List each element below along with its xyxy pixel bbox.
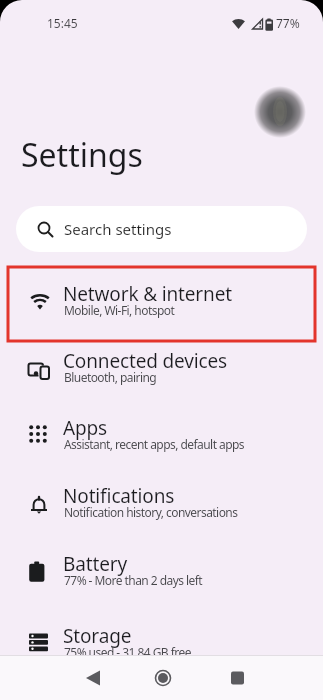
button[interactable] — [215, 655, 323, 700]
button[interactable] — [0, 655, 107, 700]
staticText: Battery — [63, 551, 127, 577]
button[interactable]: Network & internet — [0, 268, 323, 336]
button[interactable]: Connected devices — [0, 335, 323, 403]
staticText: Notifications — [63, 483, 175, 509]
staticText: Connected devices — [63, 348, 227, 374]
button[interactable] — [107, 655, 215, 700]
button[interactable]: Notifications — [0, 470, 323, 538]
staticText: 15:45 — [47, 15, 78, 31]
staticText: Mobile, Wi-Fi, hotspot — [64, 302, 175, 318]
staticText: Notification history, conversations — [64, 504, 238, 520]
button[interactable]: Storage — [0, 610, 323, 678]
staticText: 75% used - 31.84 GB free — [64, 644, 191, 660]
staticText: Assistant, recent apps, default apps — [64, 436, 245, 452]
staticText: Storage — [63, 623, 132, 649]
staticText: 77% — [276, 15, 300, 31]
button[interactable]: Battery — [0, 538, 323, 606]
staticText: Bluetooth, pairing — [64, 369, 157, 385]
staticText: Settings — [21, 133, 143, 177]
staticText: Apps — [63, 415, 108, 441]
staticText: Network & internet — [63, 281, 232, 307]
staticText: 77% - More than 2 days left — [64, 572, 203, 588]
button[interactable]: Search settings — [16, 206, 307, 252]
staticText: Search settings — [64, 219, 172, 239]
button[interactable]: Apps — [0, 402, 323, 470]
